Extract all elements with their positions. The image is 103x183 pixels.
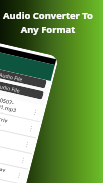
button[interactable]: Audio File (0, 76, 44, 100)
button[interactable]: 01.mp3 (0, 122, 36, 154)
button[interactable]: track.m4a (0, 170, 24, 183)
staticText: oscx arriv (0, 112, 8, 123)
button[interactable]: Audio File (0, 65, 47, 89)
staticText: ⋮ (31, 108, 39, 117)
staticText: Fri May 7 (0, 119, 2, 129)
staticText: ⋮ (19, 156, 27, 165)
staticText: ⋮ (23, 141, 31, 149)
staticText: 20210507-WA001.mp3 (0, 94, 34, 116)
staticText: Audio Converter To Any Format (3, 9, 93, 36)
button[interactable]: memo02.wav (0, 154, 28, 183)
staticText: ⋮ (15, 172, 23, 180)
staticText: Audio File (0, 82, 21, 94)
staticText: Audio File (0, 71, 23, 82)
button[interactable]: ardio (0, 138, 32, 170)
button[interactable]: 20210507-WA001.mp3 (0, 89, 44, 122)
staticText: ⋮ (27, 124, 35, 133)
staticText: Fri May 7 (0, 107, 5, 113)
staticText: memo02.wav (0, 160, 6, 173)
button[interactable]: oscx arriv (0, 106, 40, 138)
